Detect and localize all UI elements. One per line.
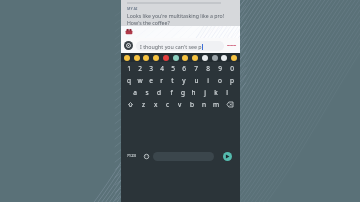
- button[interactable]: j: [199, 86, 210, 98]
- button[interactable]: 8: [202, 62, 214, 74]
- staticText: f: [170, 88, 173, 97]
- button[interactable]: d: [153, 86, 165, 98]
- staticText: a: [133, 88, 137, 97]
- button[interactable]: 2: [134, 62, 145, 74]
- button[interactable]: o: [214, 74, 226, 86]
- button[interactable]: Emoji: [212, 55, 218, 61]
- button[interactable]: Emoji: [153, 55, 159, 61]
- staticText: j: [204, 88, 206, 97]
- button[interactable]: q: [123, 74, 134, 86]
- button[interactable]: f: [165, 86, 177, 98]
- button[interactable]: m: [210, 98, 222, 110]
- staticText: c: [166, 100, 170, 109]
- staticText: g: [181, 88, 185, 97]
- button[interactable]: g: [177, 86, 188, 98]
- button[interactable]: n: [198, 98, 210, 110]
- staticText: y: [182, 76, 186, 85]
- button[interactable]: Shift: [123, 98, 138, 110]
- button[interactable]: s: [141, 86, 153, 98]
- button[interactable]: Emoji: [124, 55, 130, 61]
- staticText: t: [171, 76, 174, 85]
- staticText: e: [149, 76, 153, 85]
- button[interactable]: c: [162, 98, 174, 110]
- button[interactable]: Camera: [124, 41, 133, 50]
- staticText: 4: [160, 64, 164, 73]
- staticText: m: [213, 100, 220, 109]
- button[interactable]: 7: [190, 62, 202, 74]
- staticText: d: [157, 88, 161, 97]
- staticText: v: [178, 100, 182, 109]
- staticText: 7: [194, 64, 198, 73]
- button[interactable]: b: [186, 98, 198, 110]
- button[interactable]: Emoji: [221, 55, 227, 61]
- staticText: 8: [206, 64, 210, 73]
- staticText: h: [191, 88, 196, 97]
- button[interactable]: 9: [214, 62, 226, 74]
- button[interactable]: l: [221, 86, 232, 98]
- button[interactable]: w: [134, 74, 145, 86]
- staticText: w: [137, 76, 143, 85]
- staticText: k: [214, 88, 218, 97]
- staticText: Looks like you're multitasking like a pr…: [127, 12, 225, 19]
- button[interactable]: 1: [123, 62, 134, 74]
- button[interactable]: I thought you can't see p: [136, 41, 224, 51]
- button[interactable]: u: [190, 74, 202, 86]
- staticText: 1: [127, 64, 131, 73]
- button[interactable]: v: [174, 98, 186, 110]
- button[interactable]: i: [202, 74, 214, 86]
- button[interactable]: 5: [167, 62, 178, 74]
- staticText: How's the coffee?: [127, 19, 170, 26]
- button[interactable]: e: [145, 74, 156, 86]
- button[interactable]: 4: [156, 62, 167, 74]
- button[interactable]: Send: [216, 111, 238, 201]
- button[interactable]: z: [138, 98, 150, 110]
- button[interactable]: 0: [226, 62, 238, 74]
- staticText: s: [145, 88, 149, 97]
- button[interactable]: Emoji: [202, 55, 208, 61]
- button[interactable]: Symbols: [123, 111, 140, 201]
- staticText: b: [190, 100, 194, 109]
- staticText: i: [207, 76, 209, 85]
- staticText: MY AI: [127, 6, 138, 11]
- staticText: q: [127, 76, 131, 85]
- button[interactable]: Emoji: [134, 55, 140, 61]
- button[interactable]: x: [150, 98, 162, 110]
- button[interactable]: a: [129, 86, 141, 98]
- staticText: 9: [218, 64, 222, 73]
- staticText: I thought you can't see p: [140, 43, 202, 50]
- button[interactable]: Backspace: [222, 98, 238, 110]
- staticText: 6: [182, 64, 186, 73]
- button[interactable]: 3: [145, 62, 156, 74]
- staticText: 5: [171, 64, 175, 73]
- button[interactable]: Emoji: [143, 55, 149, 61]
- staticText: ?123: [127, 153, 137, 159]
- button[interactable]: More options: [226, 40, 237, 51]
- button[interactable]: 6: [178, 62, 190, 74]
- staticText: l: [226, 88, 228, 97]
- button[interactable]: Emoji keyboard: [140, 111, 153, 201]
- button[interactable]: Emoji: [192, 55, 198, 61]
- staticText: 3: [149, 64, 153, 73]
- staticText: u: [194, 76, 199, 85]
- staticText: o: [218, 76, 222, 85]
- staticText: r: [160, 76, 163, 85]
- staticText: 0: [230, 64, 234, 73]
- button[interactable]: Emoji: [163, 55, 169, 61]
- button[interactable]: Emoji: [182, 55, 188, 61]
- button[interactable]: h: [188, 86, 199, 98]
- button[interactable]: Emoji: [231, 55, 237, 61]
- button[interactable]: k: [210, 86, 221, 98]
- staticText: x: [154, 100, 158, 109]
- staticText: 2: [138, 64, 142, 73]
- button[interactable]: Emoji: [173, 55, 179, 61]
- staticText: z: [142, 100, 146, 109]
- button[interactable]: y: [178, 74, 190, 86]
- button[interactable]: r: [156, 74, 167, 86]
- staticText: p: [230, 76, 234, 85]
- button[interactable]: p: [226, 74, 238, 86]
- staticText: n: [202, 100, 207, 109]
- button[interactable]: t: [167, 74, 178, 86]
